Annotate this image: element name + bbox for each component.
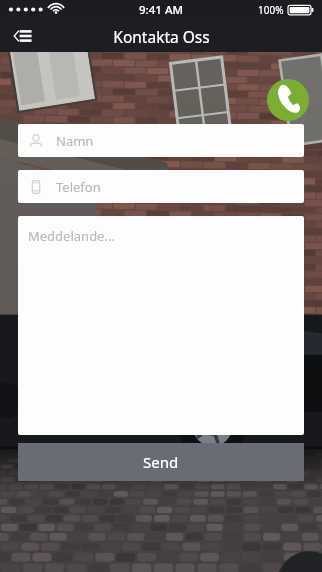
button[interactable]: Call: [267, 79, 309, 121]
button[interactable]: Send: [18, 443, 304, 481]
button[interactable]: Telefon: [18, 170, 304, 203]
button[interactable]: Namn: [18, 124, 304, 157]
staticText: Telefon: [56, 178, 101, 196]
button[interactable]: Meddelande...: [18, 216, 304, 435]
staticText: Send: [143, 452, 179, 472]
staticText: 100%: [258, 3, 284, 17]
staticText: Namn: [56, 132, 94, 150]
staticText: Meddelande...: [28, 227, 115, 245]
button[interactable]: Menu: [8, 22, 36, 50]
staticText: 9:41 AM: [139, 2, 183, 18]
staticText: Kontakta Oss: [113, 26, 210, 47]
